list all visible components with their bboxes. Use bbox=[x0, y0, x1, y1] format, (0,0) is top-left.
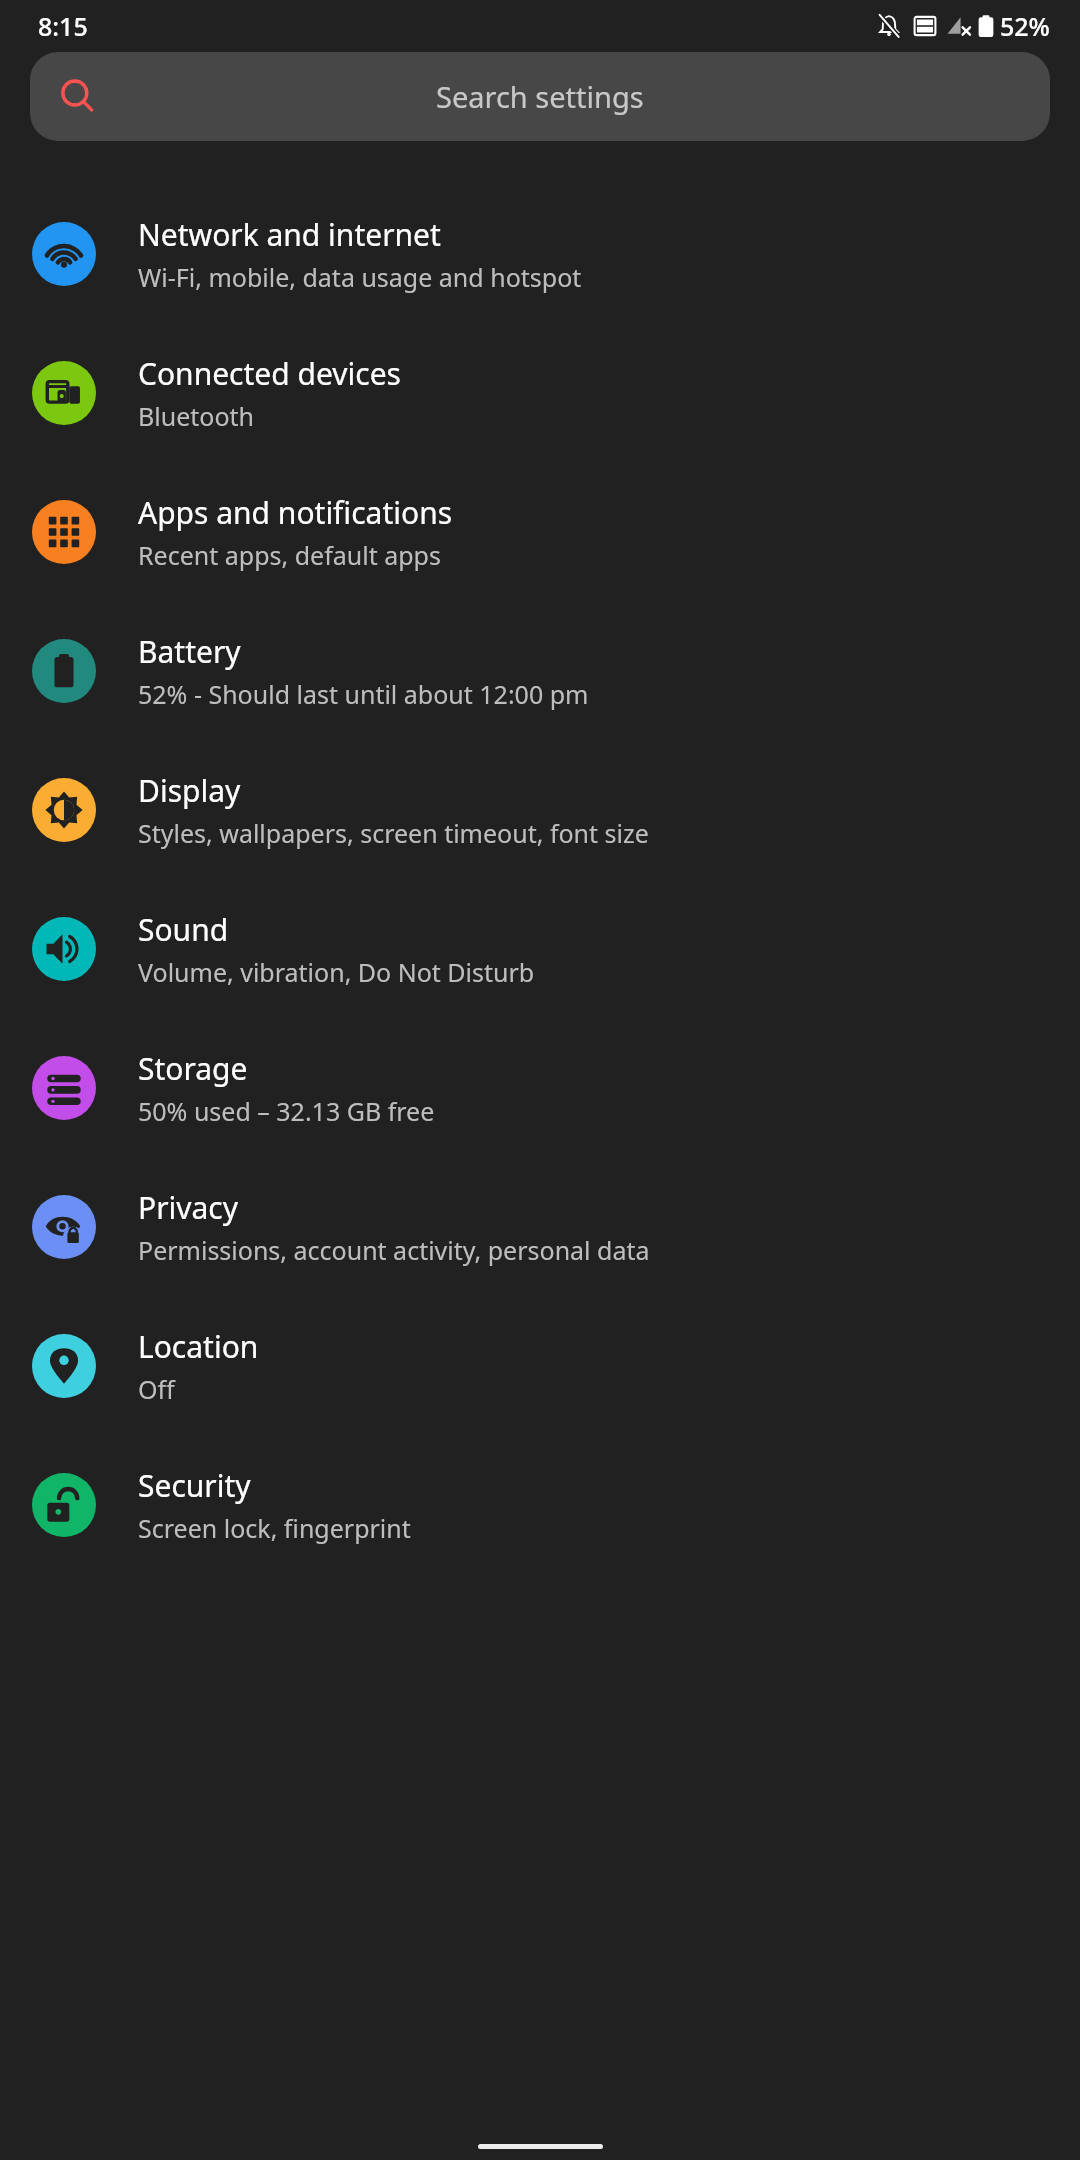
staticText: Styles, wallpapers, screen timeout, font… bbox=[138, 816, 649, 850]
staticText: 50% used – 32.13 GB free bbox=[138, 1094, 435, 1128]
staticText: Security bbox=[138, 1465, 251, 1506]
staticText: Wi-Fi, mobile, data usage and hotspot bbox=[138, 260, 582, 294]
staticText: 8:15 bbox=[38, 9, 88, 43]
staticText: Bluetooth bbox=[138, 399, 255, 433]
staticText: Off bbox=[138, 1372, 175, 1406]
staticText: Volume, vibration, Do Not Disturb bbox=[138, 955, 535, 989]
staticText: Network and internet bbox=[138, 214, 441, 255]
button[interactable]: Location bbox=[0, 1296, 1080, 1435]
button[interactable]: Storage bbox=[0, 1018, 1080, 1157]
button[interactable]: Display bbox=[0, 740, 1080, 879]
staticText: Recent apps, default apps bbox=[138, 538, 441, 572]
staticText: Apps and notifications bbox=[138, 492, 453, 533]
button[interactable]: Privacy bbox=[0, 1157, 1080, 1296]
staticText: Privacy bbox=[138, 1187, 239, 1228]
staticText: 52% - Should last until about 12:00 pm bbox=[138, 677, 589, 711]
staticText: Search settings bbox=[436, 77, 644, 116]
button[interactable]: Network and internet bbox=[0, 184, 1080, 323]
button[interactable]: Connected devices bbox=[0, 323, 1080, 462]
button[interactable]: Security bbox=[0, 1435, 1080, 1574]
staticText: Permissions, account activity, personal … bbox=[138, 1233, 650, 1267]
staticText: Battery bbox=[138, 631, 241, 672]
button[interactable]: Battery bbox=[0, 601, 1080, 740]
staticText: Storage bbox=[138, 1048, 248, 1089]
staticText: Sound bbox=[138, 909, 229, 950]
staticText: Connected devices bbox=[138, 353, 401, 394]
staticText: Display bbox=[138, 770, 241, 811]
button[interactable]: Search settings bbox=[30, 52, 1050, 141]
button[interactable]: Apps and notifications bbox=[0, 462, 1080, 601]
staticText: 52% bbox=[1000, 9, 1050, 43]
button[interactable]: Sound bbox=[0, 879, 1080, 1018]
staticText: Screen lock, fingerprint bbox=[138, 1511, 411, 1545]
staticText: Location bbox=[138, 1326, 259, 1367]
